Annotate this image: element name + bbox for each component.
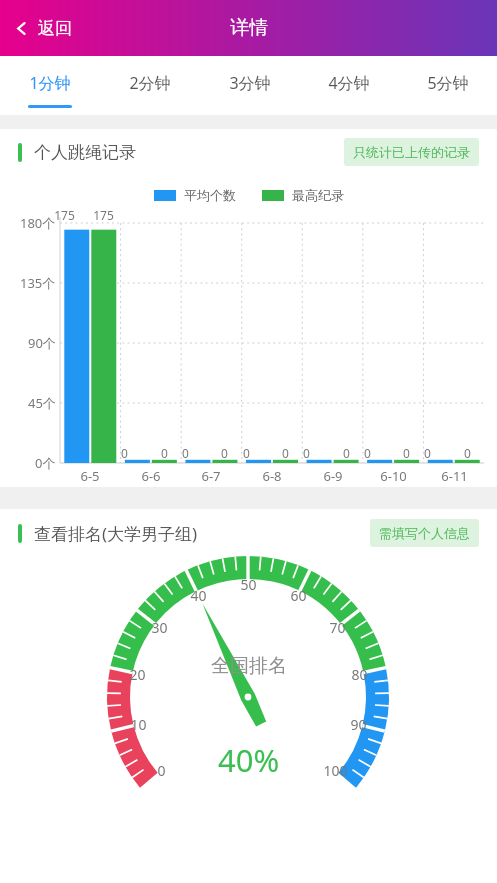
staticText: 10 <box>130 715 147 734</box>
staticText: 6-7 <box>201 467 221 485</box>
staticText: 6-11 <box>441 467 468 485</box>
button[interactable]: 返回 <box>0 8 88 49</box>
button[interactable]: 3分钟 <box>200 56 299 115</box>
staticText: 175 <box>93 207 114 223</box>
staticText: 2分钟 <box>129 72 171 94</box>
staticText: 0 <box>182 445 189 461</box>
staticText: 45个 <box>28 394 56 412</box>
staticText: 0 <box>221 445 228 461</box>
staticText: 最高纪录 <box>292 187 344 203</box>
staticText: 30 <box>151 618 168 637</box>
staticText: 6-8 <box>262 467 282 485</box>
staticText: 0 <box>403 445 410 461</box>
staticText: 6-6 <box>141 467 161 485</box>
staticText: 0 <box>157 761 166 780</box>
staticText: 80 <box>351 665 368 684</box>
staticText: 3分钟 <box>229 72 271 94</box>
staticText: 4分钟 <box>328 72 370 94</box>
staticText: 0 <box>161 445 168 461</box>
staticText: 70 <box>329 618 346 637</box>
staticText: 0 <box>464 445 471 461</box>
staticText: 90 <box>350 715 367 734</box>
staticText: 5分钟 <box>427 72 469 94</box>
staticText: 6-9 <box>323 467 343 485</box>
staticText: 0 <box>121 445 128 461</box>
button[interactable]: 只统计已上传的记录 <box>344 138 479 166</box>
staticText: 详情 <box>230 16 268 40</box>
staticText: 个人跳绳记录 <box>34 142 136 163</box>
staticText: 平均个数 <box>184 187 236 203</box>
staticText: 6-5 <box>80 467 100 485</box>
staticText: 50 <box>240 575 257 594</box>
staticText: 100 <box>323 761 348 780</box>
staticText: 0 <box>282 445 289 461</box>
staticText: 60 <box>290 586 307 605</box>
staticText: 查看排名(大学男子组) <box>34 522 198 545</box>
staticText: 180个 <box>20 214 56 232</box>
staticText: 40 <box>190 586 207 605</box>
staticText: 40% <box>218 739 280 781</box>
staticText: 全国排名 <box>211 654 287 678</box>
staticText: 90个 <box>28 334 56 352</box>
staticText: 0个 <box>35 454 56 472</box>
button[interactable]: 1分钟 <box>0 56 100 115</box>
staticText: 0 <box>303 445 310 461</box>
staticText: 只统计已上传的记录 <box>353 144 470 160</box>
staticText: 175 <box>54 207 75 223</box>
staticText: 135个 <box>20 274 56 292</box>
staticText: 返回 <box>38 18 72 39</box>
button[interactable]: 5分钟 <box>398 56 497 115</box>
button[interactable]: 4分钟 <box>299 56 398 115</box>
staticText: 0 <box>364 445 371 461</box>
staticText: 6-10 <box>380 467 407 485</box>
staticText: 需填写个人信息 <box>379 525 470 541</box>
staticText: 1分钟 <box>29 72 71 94</box>
button[interactable]: 2分钟 <box>100 56 200 115</box>
staticText: 0 <box>243 445 250 461</box>
staticText: 0 <box>424 445 431 461</box>
button[interactable]: 需填写个人信息 <box>370 519 479 547</box>
staticText: 20 <box>129 665 146 684</box>
staticText: 0 <box>343 445 350 461</box>
